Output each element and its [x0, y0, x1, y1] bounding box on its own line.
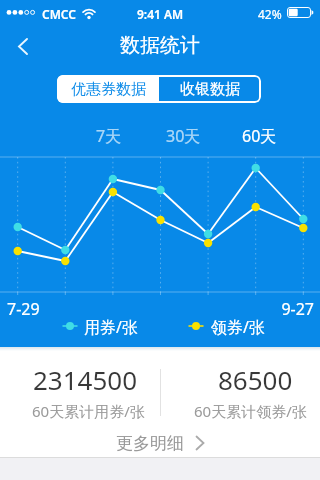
button[interactable]: 收银数据 [159, 75, 261, 103]
staticText: 更多明细 [116, 433, 184, 454]
staticText: 42% [258, 6, 282, 22]
staticText: 用券/张 [84, 316, 138, 336]
staticText: 60天累计领券/张 [194, 401, 307, 419]
button[interactable] [6, 29, 40, 63]
staticText: 优惠券数据 [71, 80, 146, 99]
staticText: 2314500 [33, 362, 138, 390]
staticText: 数据统计 [120, 33, 200, 58]
staticText: 收银数据 [180, 80, 240, 99]
staticText: 60天累计用券/张 [32, 401, 145, 419]
button[interactable]: 30天 [155, 122, 211, 150]
staticText: 9:41 AM [137, 6, 184, 22]
button[interactable]: 2314500 [15, 362, 155, 390]
staticText: 7-29 [7, 298, 40, 320]
staticText: 7天 [96, 125, 122, 147]
staticText: CMCC [42, 6, 76, 22]
staticText: 9-27 [254, 298, 314, 320]
button[interactable]: 优惠券数据 [57, 75, 159, 103]
staticText: 86500 [218, 362, 293, 390]
staticText: 30天 [166, 125, 201, 147]
button[interactable]: 领券/张 [188, 316, 265, 336]
button[interactable]: 60天 [231, 122, 287, 150]
staticText: 60天 [242, 125, 277, 147]
button[interactable]: 用券/张 [62, 316, 138, 336]
staticText: 领券/张 [211, 316, 265, 336]
button[interactable]: 7天 [81, 122, 137, 150]
button[interactable]: 更多明细 [0, 432, 320, 454]
button[interactable]: 86500 [185, 362, 320, 390]
